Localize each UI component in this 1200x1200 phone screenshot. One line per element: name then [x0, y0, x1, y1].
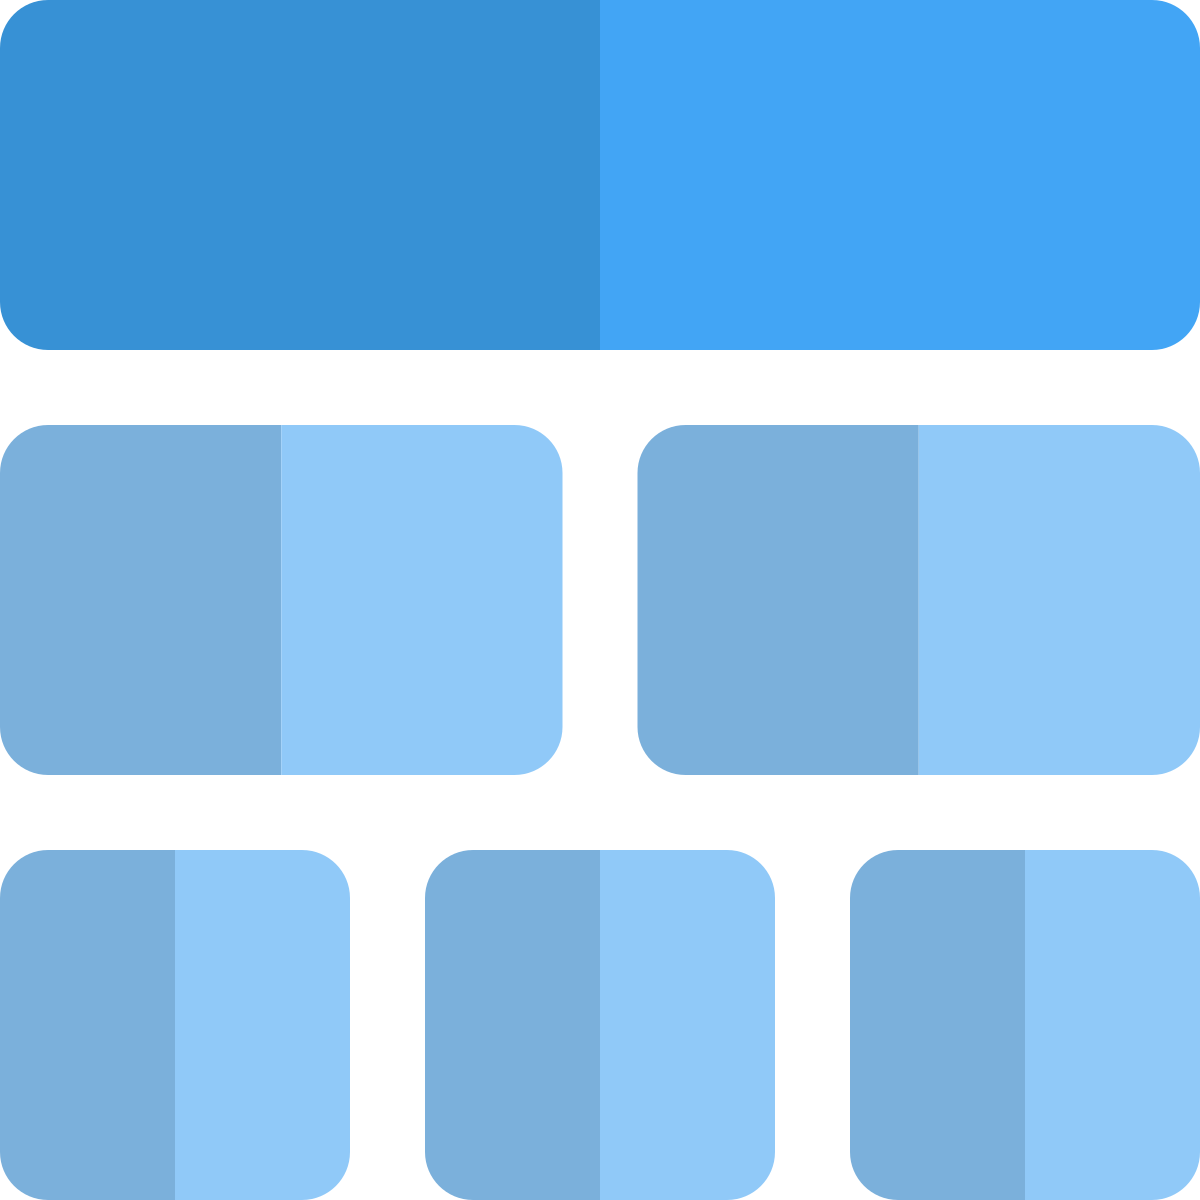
button[interactable]: Tile 4: [425, 850, 775, 1200]
button[interactable]: Tile 3: [0, 850, 350, 1200]
button[interactable]: Tile 2: [637, 425, 1200, 775]
button[interactable]: Tile 5: [850, 850, 1200, 1200]
button[interactable]: Tile 1: [0, 425, 562, 775]
button[interactable]: Featured tile: [0, 0, 1200, 350]
